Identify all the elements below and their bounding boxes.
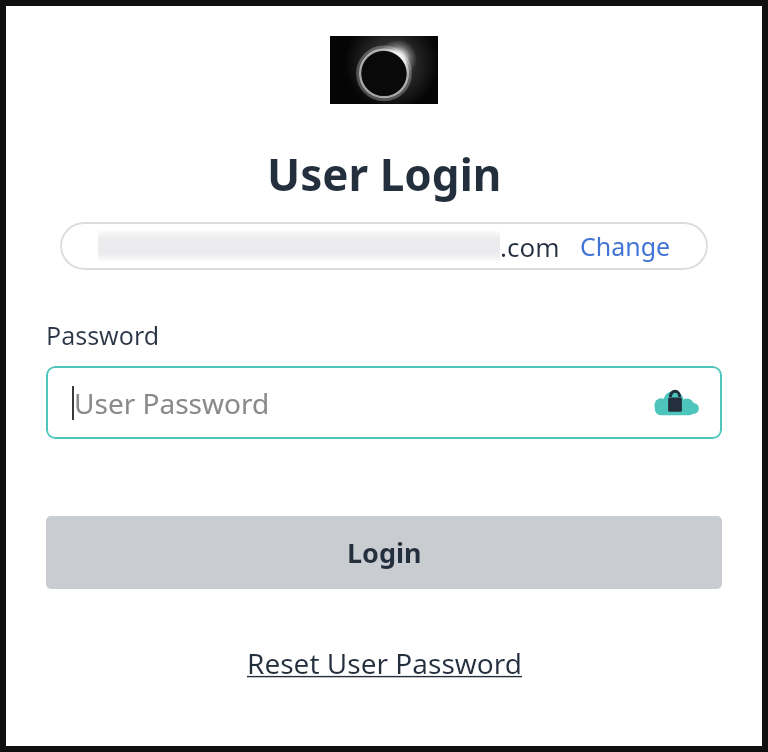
button[interactable]: Change	[580, 229, 671, 263]
staticText: Reset User Password	[247, 644, 522, 682]
staticText: User Login	[267, 144, 502, 204]
staticText: User Password	[74, 384, 270, 422]
staticText: Password	[46, 318, 160, 352]
button[interactable]: .com	[60, 222, 708, 270]
button[interactable]: Login	[46, 516, 722, 589]
staticText: Login	[347, 534, 422, 571]
other: Secure password	[652, 386, 698, 420]
staticText: Change	[580, 229, 671, 263]
button[interactable]: Reset User Password	[247, 644, 522, 682]
button[interactable]: User Password	[46, 366, 722, 439]
staticText: .com	[500, 229, 560, 264]
